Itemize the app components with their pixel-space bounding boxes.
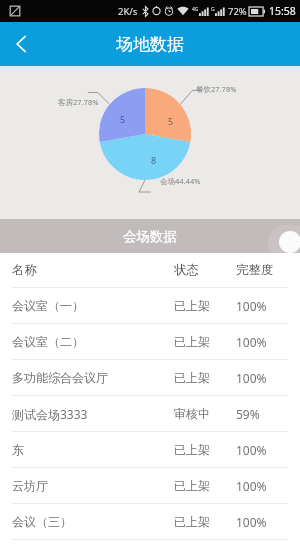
staticText: 状态 bbox=[174, 262, 236, 278]
staticText: 已上架 bbox=[174, 334, 236, 349]
staticText: 100% bbox=[236, 298, 288, 314]
staticText: 多功能综合会议厅 bbox=[12, 370, 174, 385]
button[interactable]: 云坊厅 bbox=[0, 468, 300, 503]
staticText: 4G bbox=[192, 6, 199, 13]
button[interactable]: 多功能综合会议厅 bbox=[0, 360, 300, 395]
staticText: 会场44.44% bbox=[160, 176, 201, 186]
staticText: 餐饮27.78% bbox=[196, 84, 237, 94]
button[interactable]: Back bbox=[0, 22, 44, 66]
staticText: 会议（三） bbox=[12, 514, 174, 529]
staticText: 已上架 bbox=[174, 478, 236, 493]
staticText: 审核中 bbox=[174, 406, 236, 421]
staticText: 会议室（二） bbox=[12, 334, 174, 349]
staticText: 100% bbox=[236, 370, 288, 386]
button[interactable]: 测试会场3333 bbox=[0, 396, 300, 431]
staticText: 100% bbox=[236, 478, 288, 494]
button[interactable]: 会议（三） bbox=[0, 504, 300, 539]
staticText: 名称 bbox=[12, 262, 174, 278]
staticText: 100% bbox=[236, 442, 288, 458]
staticText: 测试会场3333 bbox=[12, 406, 174, 422]
staticText: 100% bbox=[236, 514, 288, 530]
staticText: 2K/s bbox=[118, 5, 138, 18]
button[interactable]: 东 bbox=[0, 432, 300, 467]
staticText: 5 bbox=[120, 113, 126, 125]
staticText: 已上架 bbox=[174, 298, 236, 313]
staticText: 东 bbox=[12, 442, 174, 457]
staticText: G bbox=[211, 6, 215, 13]
staticText: 客房27.78% bbox=[58, 97, 99, 107]
staticText: 会议室（一） bbox=[12, 298, 174, 313]
button[interactable]: 会议室（一） bbox=[0, 288, 300, 323]
staticText: 完整度 bbox=[236, 262, 288, 278]
staticText: 59% bbox=[236, 406, 288, 422]
staticText: 5 bbox=[168, 115, 174, 127]
staticText: 云坊厅 bbox=[12, 478, 174, 493]
staticText: 72% bbox=[228, 5, 247, 18]
staticText: 场地数据 bbox=[116, 34, 184, 55]
staticText: 100% bbox=[236, 334, 288, 350]
staticText: 已上架 bbox=[174, 442, 236, 457]
staticText: 会场数据 bbox=[123, 228, 177, 245]
button[interactable]: 会议室（二） bbox=[0, 324, 300, 359]
staticText: 已上架 bbox=[174, 370, 236, 385]
staticText: 15:58 bbox=[269, 4, 296, 18]
staticText: 8 bbox=[151, 154, 157, 166]
staticText: 已上架 bbox=[174, 514, 236, 529]
